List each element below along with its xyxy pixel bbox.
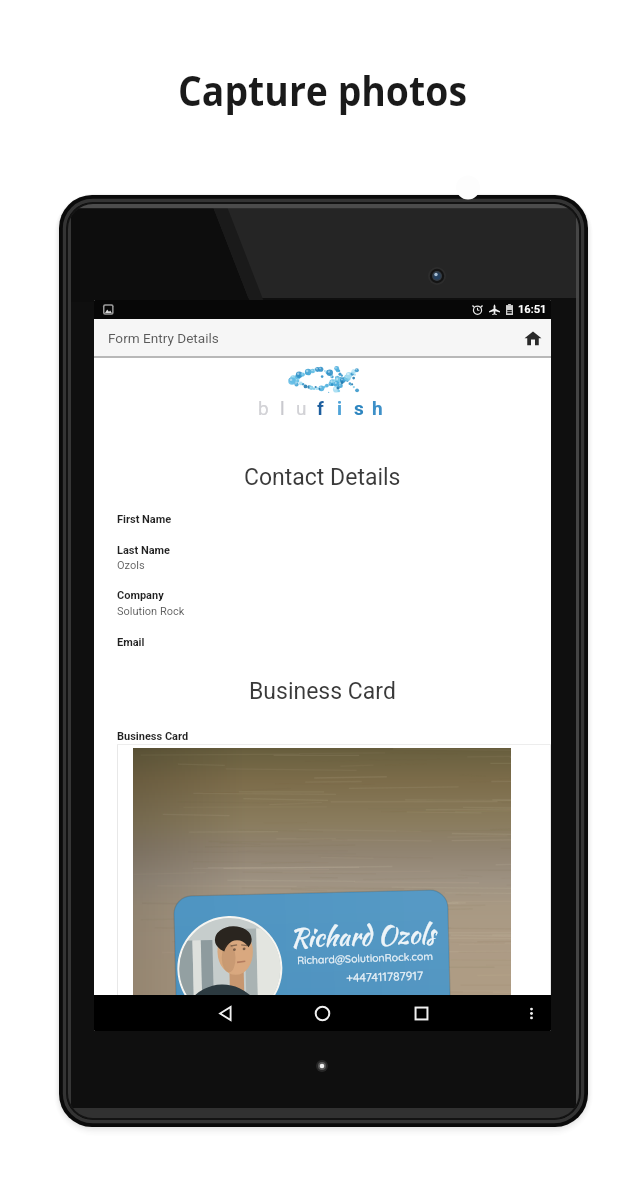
staticText: Capture photos	[178, 61, 467, 115]
staticText: h	[372, 397, 383, 419]
button[interactable]: Back	[207, 995, 243, 1031]
staticText: Richard@SolutionRock.com	[297, 949, 433, 966]
button[interactable]: More options	[513, 995, 549, 1031]
button[interactable]: Home	[304, 995, 340, 1031]
staticText: Solution Rock	[117, 605, 185, 618]
staticText: b	[258, 397, 269, 419]
button[interactable]: Recent apps	[403, 995, 439, 1031]
staticText: Business Card	[249, 678, 396, 705]
staticText: Email	[117, 636, 145, 649]
staticText: Ozols	[117, 559, 145, 572]
staticText: 16:51	[518, 303, 547, 316]
button[interactable]: Contact Details	[94, 463, 551, 491]
staticText: Richard Ozols	[289, 915, 435, 957]
button[interactable]: Business Card	[94, 677, 551, 705]
button[interactable]: Home	[514, 319, 551, 356]
staticText: l	[280, 397, 285, 419]
staticText: Form Entry Details	[108, 330, 219, 346]
staticText: Contact Details	[244, 464, 401, 491]
staticText: u	[296, 397, 307, 419]
staticText: +447411787917	[346, 968, 424, 985]
staticText: First Name	[117, 513, 172, 526]
staticText: Business Card	[117, 730, 189, 743]
staticText: f	[317, 397, 324, 419]
staticText: Last Name	[117, 544, 171, 557]
staticText: Company	[117, 589, 164, 602]
staticText: s	[354, 397, 364, 419]
staticText: i	[337, 397, 343, 419]
